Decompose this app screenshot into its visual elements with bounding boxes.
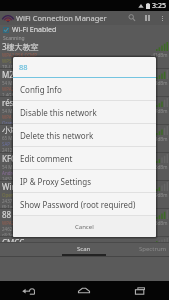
staticText: IP & Proxy Settings xyxy=(20,176,92,187)
staticText: 54 Mbps ch 11 xyxy=(2,108,33,114)
button[interactable]: Edit comment xyxy=(13,147,156,170)
staticText: c8:3a:35 xyxy=(2,232,20,236)
staticText: WPS available xyxy=(2,58,32,64)
staticText: WPA2 ch 11 xyxy=(2,220,27,226)
staticText: Config Info xyxy=(20,84,62,95)
staticText: CMCC xyxy=(2,237,25,242)
staticText: Orange xyxy=(2,120,18,124)
staticText: SAP xyxy=(2,141,11,147)
staticText: M2 xyxy=(2,69,14,80)
staticText: WiFi Connection Manager xyxy=(16,13,107,23)
staticText: Wi-Fi Enabled xyxy=(12,25,57,35)
button[interactable]: More options xyxy=(156,11,169,25)
staticText: Scanning xyxy=(3,35,25,41)
staticText: -71dBm xyxy=(151,136,168,142)
staticText: 54 Mbps ch 6 xyxy=(2,80,30,86)
staticText: 2412 MHz xyxy=(2,147,23,152)
button[interactable]: 88 xyxy=(0,209,169,237)
staticText: Open ch 6 xyxy=(2,192,24,198)
staticText: Edit comment xyxy=(20,153,73,164)
staticText: 小耶 xyxy=(2,125,18,135)
staticText: 3:25 xyxy=(152,1,166,11)
staticText: Wireless xyxy=(2,181,34,192)
staticText: 2437 MHz xyxy=(2,198,23,204)
staticText: 2452 MHz xyxy=(2,176,23,180)
button[interactable]: KFC xyxy=(0,153,169,181)
staticText: 3樓大教室 xyxy=(2,41,39,52)
staticText: 88 xyxy=(2,209,12,220)
button[interactable]: Cancel xyxy=(13,216,156,237)
staticText: -67dBm xyxy=(151,108,168,114)
staticText: 65 Mbps ch 3 xyxy=(2,135,30,141)
button[interactable]: 小耶 xyxy=(0,125,169,153)
staticText: -41dBm xyxy=(151,52,168,58)
button[interactable]: Delete this network xyxy=(13,124,156,147)
button[interactable]: Scan xyxy=(49,243,118,257)
staticText: 54 Mbps ch 9 xyxy=(2,164,30,170)
button[interactable]: 3樓大教室 xyxy=(0,41,169,69)
button[interactable]: Wireless xyxy=(0,181,169,209)
staticText: Disable this network xyxy=(20,107,97,118)
staticText: Spectrum xyxy=(139,245,167,253)
button[interactable]: Show Password (root required) xyxy=(13,193,156,216)
staticText: 88 xyxy=(19,62,28,72)
button[interactable]: Back xyxy=(8,281,48,300)
button[interactable]: Spectrum xyxy=(118,243,169,257)
staticText: KFC xyxy=(2,153,17,164)
button[interactable]: Pause scan xyxy=(139,11,156,25)
staticText: 2462 MHz xyxy=(2,226,23,232)
staticText: Delete this network xyxy=(20,130,94,141)
button[interactable]: réseau xyxy=(0,97,169,125)
staticText: Cancel xyxy=(75,223,94,231)
staticText: -55dBm xyxy=(151,220,168,226)
button[interactable]: Recents xyxy=(120,281,160,300)
button[interactable]: Wi-Fi Enabled xyxy=(0,25,169,35)
staticText: Android xyxy=(2,170,19,176)
staticText: réseau xyxy=(2,97,28,108)
staticText: WPA PSK TKIP xyxy=(2,114,32,120)
staticText: 2.4GHz xyxy=(2,92,18,96)
staticText: Show Password (root required) xyxy=(20,199,136,210)
button[interactable]: Search xyxy=(124,11,139,25)
button[interactable]: Config Info xyxy=(13,78,156,101)
staticText: -79dBm xyxy=(151,192,168,198)
button[interactable]: CMCC xyxy=(0,237,169,243)
staticText: TP-LINK_2E40 xyxy=(2,64,31,68)
staticText: f8:1a:67 xyxy=(2,204,19,208)
staticText: WPA2 PSK CCMP xyxy=(2,52,37,58)
staticText: -76dBm xyxy=(151,164,168,170)
staticText: WPA2 PSK xyxy=(2,86,24,92)
button[interactable]: Home xyxy=(64,281,104,300)
staticText: -58dBm xyxy=(151,80,168,86)
staticText: Scan xyxy=(77,245,91,253)
button[interactable]: IP & Proxy Settings xyxy=(13,170,156,193)
button[interactable]: M2 xyxy=(0,69,169,97)
button[interactable]: Disable this network xyxy=(13,101,156,124)
